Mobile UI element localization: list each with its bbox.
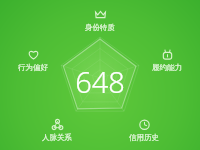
button[interactable]: 行为偏好	[6, 48, 60, 78]
button[interactable]: 信用历史	[117, 118, 171, 148]
button[interactable]: 人脉关系	[30, 118, 84, 148]
staticText: 648	[72, 62, 128, 96]
staticText: 行为偏好	[18, 63, 48, 72]
staticText: 履约能力	[152, 63, 182, 72]
staticText: 人脉关系	[42, 133, 72, 142]
button[interactable]: 身份特质	[73, 8, 127, 38]
staticText: 身份特质	[85, 23, 115, 32]
staticText: 信用历史	[129, 133, 159, 142]
button[interactable]: 履约能力	[140, 48, 194, 78]
